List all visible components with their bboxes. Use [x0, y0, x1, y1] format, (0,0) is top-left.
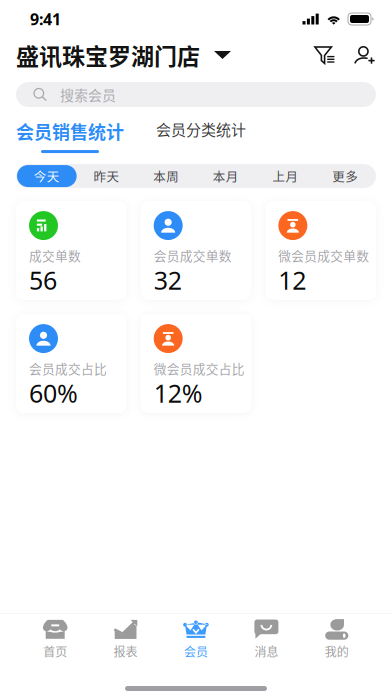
button[interactable]: 今天: [17, 165, 77, 187]
staticText: 首页: [43, 643, 67, 660]
staticText: 微会员成交占比: [154, 359, 245, 377]
staticText: 我的: [325, 643, 349, 660]
button[interactable]: 微会员成交占比: [141, 314, 251, 413]
staticText: 会员成交占比: [29, 359, 107, 377]
button[interactable]: 会员: [161, 614, 231, 665]
staticText: 微会员成交单数: [278, 246, 369, 264]
button[interactable]: Filter: [314, 46, 335, 64]
staticText: 上月: [272, 167, 298, 185]
staticText: 会员成交单数: [154, 246, 232, 264]
button[interactable]: 昨天: [77, 165, 136, 187]
button[interactable]: Add member: [354, 46, 375, 64]
staticText: 昨天: [93, 167, 119, 185]
staticText: 消息: [254, 643, 278, 660]
button[interactable]: 本月: [196, 165, 256, 187]
button[interactable]: 首页: [20, 614, 90, 665]
button[interactable]: 盛讯珠宝罗湖门店: [16, 38, 231, 72]
button[interactable]: 会员成交占比: [16, 314, 127, 413]
button[interactable]: 上月: [256, 165, 315, 187]
staticText: 本周: [153, 167, 179, 185]
staticText: 今天: [34, 167, 60, 185]
staticText: 12%: [154, 376, 203, 410]
button[interactable]: 我的: [302, 614, 372, 665]
staticText: 会员销售统计: [16, 118, 124, 144]
staticText: 报表: [114, 643, 138, 660]
staticText: 本月: [213, 167, 239, 185]
button[interactable]: 会员分类统计: [124, 118, 246, 149]
button[interactable]: 微会员成交单数: [265, 201, 376, 300]
button[interactable]: 成交单数: [16, 201, 127, 300]
staticText: 9:41: [30, 8, 61, 30]
staticText: 更多: [332, 167, 358, 185]
button[interactable]: 会员成交单数: [141, 201, 251, 300]
staticText: 搜索会员: [60, 84, 116, 105]
staticText: 12: [278, 263, 306, 297]
button[interactable]: 报表: [90, 614, 161, 665]
staticText: 56: [29, 263, 57, 297]
button[interactable]: 会员销售统计: [16, 118, 124, 153]
staticText: 成交单数: [29, 246, 81, 264]
button[interactable]: 更多: [315, 165, 375, 187]
staticText: 32: [154, 263, 182, 297]
button[interactable]: 本周: [136, 165, 196, 187]
button[interactable]: 搜索会员: [16, 82, 376, 107]
button[interactable]: 消息: [231, 614, 302, 665]
staticText: 会员分类统计: [156, 118, 246, 140]
staticText: 60%: [29, 376, 78, 410]
staticText: 盛讯珠宝罗湖门店: [16, 38, 200, 72]
staticText: 会员: [184, 643, 208, 660]
